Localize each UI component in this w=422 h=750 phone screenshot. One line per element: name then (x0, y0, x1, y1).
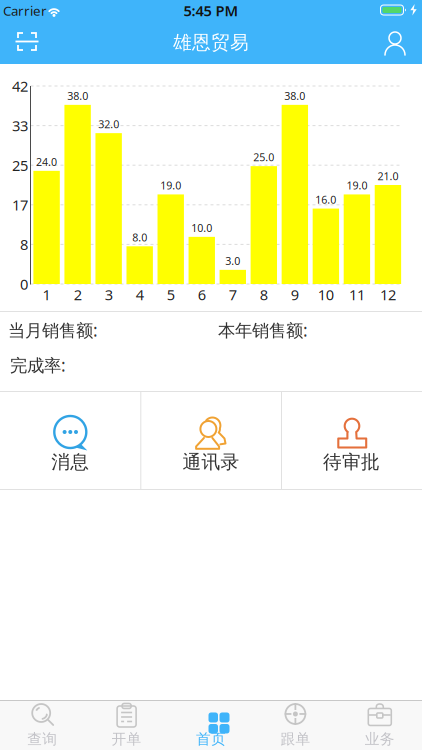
staticText: 32.0 (98, 117, 119, 131)
staticText: 10 (318, 285, 334, 304)
staticText: 38.0 (67, 89, 88, 103)
staticText: 3.0 (225, 254, 240, 268)
staticText: 19.0 (346, 178, 367, 192)
button[interactable]: 业务 (338, 700, 422, 750)
staticText: 首页 (196, 730, 226, 748)
staticText: 11 (349, 285, 365, 304)
button[interactable] (383, 31, 407, 55)
staticText: 0 (20, 274, 28, 294)
staticText: 42 (12, 76, 28, 96)
button[interactable]: 消息 (0, 391, 141, 490)
staticText: 8.0 (132, 230, 147, 244)
staticText: 完成率: (10, 353, 66, 376)
button[interactable]: 跟单 (253, 700, 338, 750)
staticText: 17 (12, 195, 28, 215)
staticText: 2 (74, 285, 82, 304)
staticText: 查询 (27, 730, 57, 748)
staticText: 7 (229, 285, 237, 304)
staticText: 5:45 PM (183, 1, 238, 20)
staticText: 开单 (112, 730, 142, 748)
staticText: 21.0 (377, 169, 398, 183)
staticText: 待审批 (323, 450, 380, 473)
staticText: 1 (43, 285, 51, 304)
button[interactable]: 首页 (169, 700, 253, 750)
staticText: 4 (136, 285, 144, 304)
staticText: Carrier (3, 2, 47, 19)
staticText: 业务 (365, 730, 395, 748)
button[interactable]: 开单 (84, 700, 169, 750)
staticText: 跟单 (280, 730, 310, 748)
staticText: 8 (260, 285, 268, 304)
staticText: 6 (198, 285, 206, 304)
button[interactable]: 待审批 (281, 391, 422, 490)
staticText: 16.0 (315, 192, 336, 207)
staticText: 8 (20, 235, 28, 254)
button[interactable] (14, 31, 40, 53)
staticText: 通讯录 (182, 450, 239, 473)
staticText: 19.0 (160, 178, 181, 192)
staticText: 当月销售额: (8, 318, 98, 341)
staticText: 38.0 (284, 89, 305, 103)
staticText: 12 (380, 285, 396, 304)
button[interactable]: 通讯录 (141, 391, 281, 490)
staticText: 10.0 (191, 221, 212, 235)
staticText: 5 (167, 285, 175, 304)
button[interactable]: 查询 (0, 700, 84, 750)
staticText: 9 (291, 285, 299, 304)
staticText: 3 (105, 285, 113, 304)
staticText: 本年销售额: (218, 318, 308, 341)
staticText: 消息 (51, 450, 89, 473)
staticText: 24.0 (36, 155, 57, 169)
staticText: 33 (12, 116, 28, 135)
staticText: 雄恩贸易 (173, 31, 249, 54)
staticText: 25.0 (253, 150, 274, 164)
staticText: 25 (12, 155, 28, 175)
